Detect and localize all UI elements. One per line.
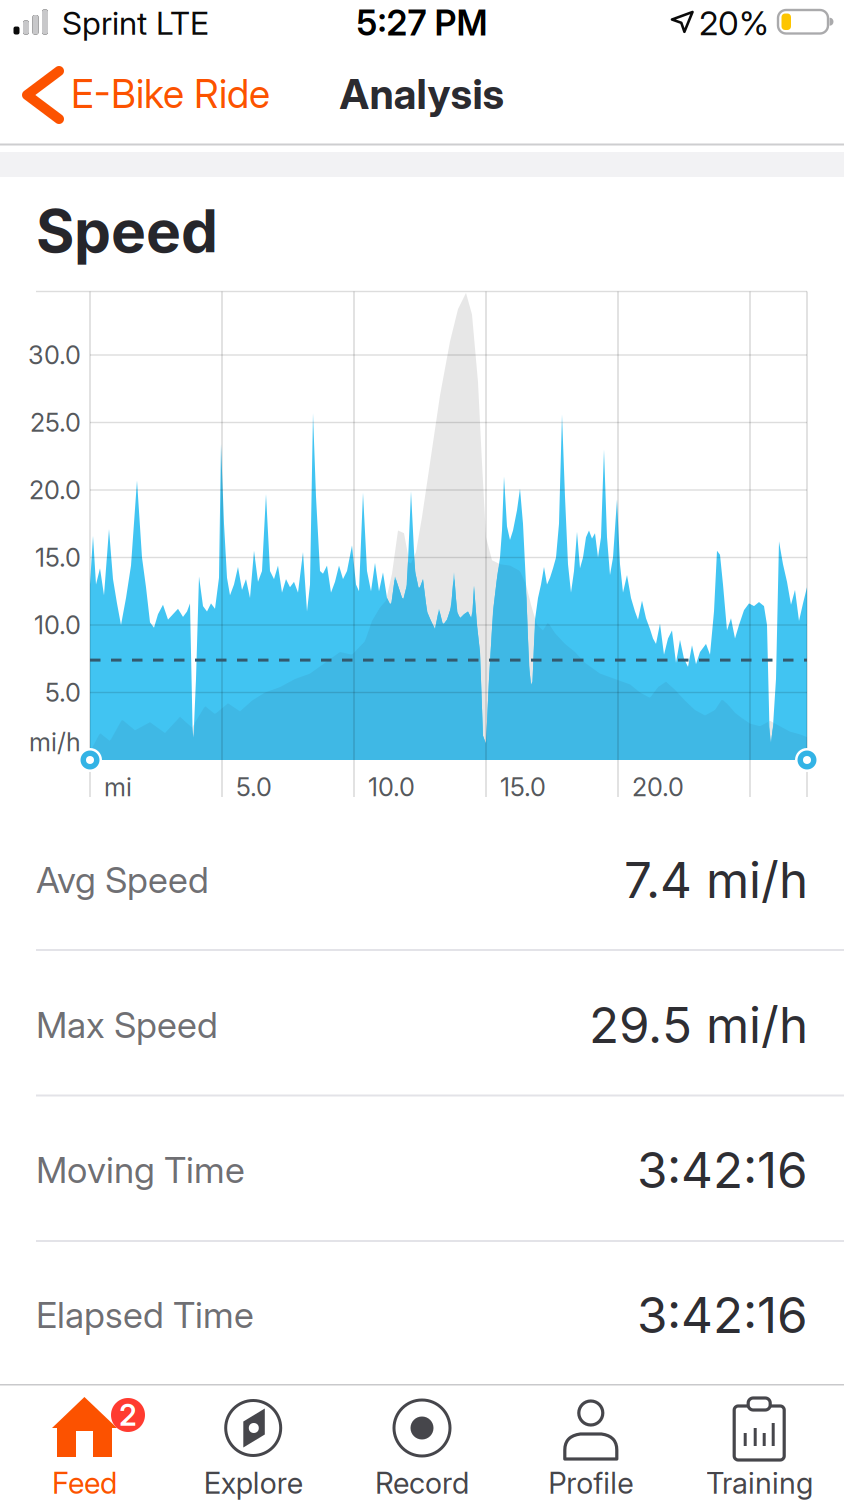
staticText: mi (104, 772, 132, 802)
button[interactable]: Explore (169, 1386, 338, 1500)
staticText: 5.0 (45, 678, 81, 707)
staticText: Profile (548, 1466, 633, 1500)
staticText: 29.5 mi/h (589, 996, 808, 1054)
button[interactable]: Profile (506, 1386, 675, 1500)
staticText: Explore (204, 1466, 303, 1500)
staticText: mi/h (29, 727, 81, 757)
staticText: Max Speed (36, 1004, 218, 1046)
staticText: E-Bike Ride (71, 71, 270, 117)
staticText: 30.0 (28, 340, 81, 370)
staticText: 20.0 (632, 772, 684, 802)
staticText: 2 (119, 1398, 137, 1432)
staticText: 5.0 (236, 772, 272, 802)
staticText: Speed (36, 196, 218, 266)
button[interactable]: Record (338, 1386, 506, 1500)
staticText: 10.0 (368, 772, 415, 802)
staticText: 10.0 (34, 610, 81, 640)
button[interactable]: Back (16, 62, 346, 126)
button[interactable]: 2 (0, 1386, 169, 1500)
button[interactable]: Training (675, 1386, 844, 1500)
staticText: 15.0 (500, 772, 546, 802)
staticText: 15.0 (35, 543, 81, 572)
staticText: Moving Time (36, 1149, 245, 1191)
staticText: 7.4 mi/h (624, 851, 808, 909)
staticText: 3:42:16 (637, 1286, 808, 1344)
staticText: 20% (699, 3, 769, 43)
staticText: LTE (156, 4, 209, 42)
staticText: Avg Speed (36, 859, 209, 901)
staticText: 25.0 (30, 408, 81, 437)
staticText: Elapsed Time (36, 1294, 254, 1336)
staticText: 3:42:16 (637, 1141, 808, 1199)
staticText: Analysis (339, 70, 504, 118)
staticText: 20.0 (29, 475, 81, 505)
staticText: Sprint (62, 4, 147, 42)
staticText: Training (706, 1466, 813, 1500)
staticText: Record (375, 1466, 469, 1500)
staticText: Feed (52, 1466, 117, 1500)
staticText: 5:27 PM (356, 3, 487, 43)
